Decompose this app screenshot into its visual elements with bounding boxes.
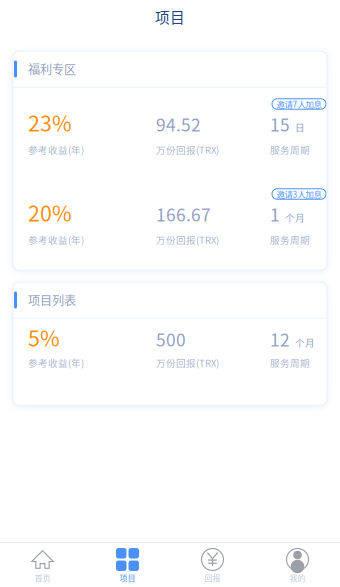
button[interactable]: 5% (13, 319, 327, 405)
staticText: 邀请7人加息 (276, 98, 321, 110)
staticText: 项目 (155, 6, 185, 27)
button[interactable]: 项目 (85, 543, 170, 587)
staticText: 个月 (285, 210, 305, 224)
staticText: 参考收益(年) (28, 233, 84, 246)
staticText: 5% (28, 322, 60, 353)
button[interactable]: 23% (13, 88, 327, 178)
staticText: 项目 (119, 572, 135, 584)
staticText: 12 (270, 326, 290, 351)
staticText: 首页 (34, 572, 50, 584)
staticText: 15 (270, 111, 290, 136)
staticText: 94.52 (156, 111, 201, 136)
button[interactable]: 我的 (255, 543, 340, 587)
staticText: 参考收益(年) (28, 356, 84, 369)
staticText: 166.67 (156, 201, 211, 226)
staticText: 23% (28, 107, 72, 138)
staticText: 万份回报(TRX) (156, 356, 219, 369)
staticText: 回报 (204, 572, 220, 584)
staticText: 项目列表 (28, 291, 76, 309)
staticText: 500 (156, 326, 186, 351)
button[interactable]: 回报 (170, 543, 255, 587)
staticText: 参考收益(年) (28, 143, 84, 156)
staticText: 1 (270, 201, 280, 226)
staticText: 邀请3人加息 (276, 188, 321, 200)
button[interactable]: 首页 (0, 543, 85, 587)
staticText: 个月 (295, 335, 315, 349)
staticText: 服务周期 (270, 356, 310, 369)
staticText: 我的 (289, 572, 305, 584)
staticText: 服务周期 (270, 143, 310, 156)
staticText: 福利专区 (28, 60, 76, 78)
button[interactable]: 20% (13, 178, 327, 270)
staticText: 万份回报(TRX) (156, 143, 219, 156)
staticText: 万份回报(TRX) (156, 233, 219, 246)
staticText: 20% (28, 197, 72, 228)
staticText: 日 (295, 120, 305, 134)
staticText: 服务周期 (270, 233, 310, 246)
